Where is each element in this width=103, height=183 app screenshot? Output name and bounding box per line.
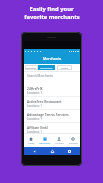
staticText: Rewards (26, 66, 37, 69)
other: Recents (68, 150, 71, 153)
staticText: Locations: 1 (27, 104, 43, 108)
other: Home (51, 150, 54, 153)
staticText: Merchants (43, 56, 62, 61)
staticText: Easily find your (29, 5, 74, 13)
button[interactable]: Merchants (38, 134, 52, 148)
button[interactable]: Affiliate (link) (24, 123, 80, 135)
staticText: Advantage Tennis Services (27, 112, 69, 116)
staticText: favorite merchants (24, 13, 80, 21)
staticText: Locations: 1 (27, 91, 43, 95)
staticText: 24HrsPrlX (27, 86, 43, 90)
button[interactable]: 24HrsPrlX (24, 84, 80, 96)
staticText: Offers (61, 66, 69, 69)
staticText: ActiveTree Restaurant (27, 99, 62, 103)
button[interactable]: Advantage Tennis Services (24, 110, 80, 122)
staticText: Affiliate (link) (27, 125, 48, 129)
staticText: Locations: 1 (27, 130, 43, 134)
button[interactable]: Settings (66, 134, 80, 148)
button[interactable]: Home (24, 134, 38, 148)
staticText: Merchants (40, 66, 53, 69)
staticText: Search Merchants (27, 74, 54, 78)
button[interactable]: Merchants (38, 65, 55, 70)
staticText: Settings (69, 142, 78, 145)
staticText: Locations: 1 (27, 117, 43, 121)
staticText: Account (55, 142, 64, 145)
staticText: Home (28, 142, 35, 145)
staticText: Merchants (39, 142, 51, 145)
button[interactable]: Offers (57, 65, 72, 70)
button[interactable]: Rewards (25, 65, 38, 70)
button[interactable]: ActiveTree Restaurant (24, 97, 80, 109)
other: Back (33, 150, 36, 153)
button[interactable]: Account (52, 134, 66, 148)
button[interactable]: Search Merchants (24, 72, 80, 84)
